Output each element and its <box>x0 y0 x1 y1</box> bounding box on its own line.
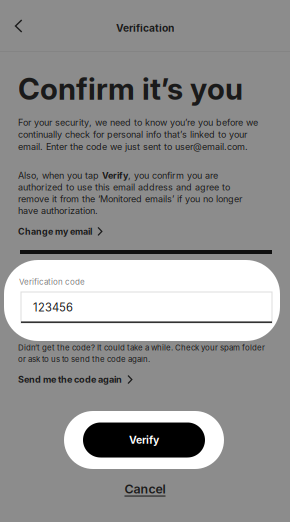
staticText: Confirm it’s you <box>18 71 243 107</box>
staticText: Didn’t get the code? It could take a whi… <box>18 343 265 364</box>
staticText: Cancel <box>124 481 165 496</box>
staticText: For your security, we need to know you’r… <box>18 117 258 152</box>
staticText: Verification <box>116 22 174 34</box>
button[interactable]: Change my email <box>18 222 109 241</box>
button[interactable]: Cancel <box>0 478 290 500</box>
staticText: Change my email <box>18 226 92 237</box>
staticText: Verify <box>129 434 159 446</box>
staticText: 123456 <box>33 301 73 314</box>
staticText: Verification code <box>19 277 85 287</box>
button[interactable]: Verify <box>64 411 224 469</box>
staticText: Send me the code again <box>18 374 122 385</box>
button[interactable]: Back <box>0 0 40 46</box>
staticText: Also, when you tap Verify, you confirm y… <box>18 170 242 216</box>
button[interactable]: Send me the code again <box>18 370 139 389</box>
